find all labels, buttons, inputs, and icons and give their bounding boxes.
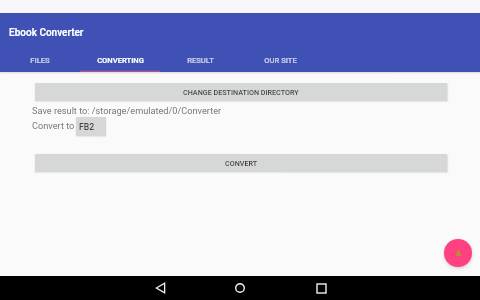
button[interactable]: CONVERTING [80, 50, 160, 72]
button[interactable]: CHANGE DESTINATION DIRECTORY [35, 83, 447, 101]
button[interactable]: FB2 [76, 117, 106, 136]
staticText: FILES [30, 56, 50, 65]
staticText: CHANGE DESTINATION DIRECTORY [183, 88, 299, 96]
staticText: Ebook Converter [9, 27, 84, 39]
staticText: OUR SITE [264, 56, 297, 65]
button[interactable]: FILES [0, 50, 80, 72]
staticText: Save result to: /storage/emulated/0/Conv… [32, 105, 222, 116]
button[interactable]: Back [120, 276, 200, 300]
button[interactable]: Add file [444, 239, 472, 267]
staticText: CONVERT [225, 159, 258, 167]
button[interactable]: Recents [281, 276, 361, 300]
button[interactable]: Home [200, 276, 280, 300]
button[interactable]: CONVERT [35, 154, 447, 172]
staticText: RESULT [187, 56, 214, 65]
button[interactable]: OUR SITE [240, 50, 320, 72]
staticText: FB2 [79, 122, 95, 132]
staticText: Convert to [32, 120, 75, 131]
button[interactable]: RESULT [160, 50, 240, 72]
staticText: CONVERTING [97, 56, 144, 65]
